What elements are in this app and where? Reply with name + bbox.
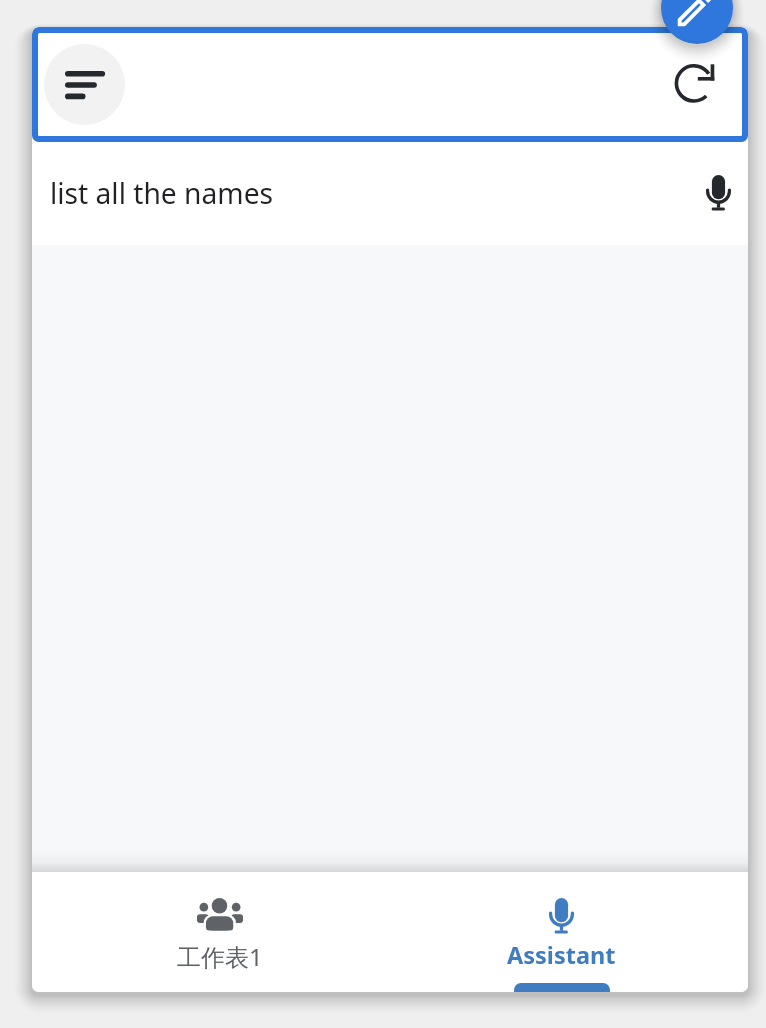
button[interactable]: Menu xyxy=(44,44,125,125)
staticText: 工作表1 xyxy=(177,940,263,973)
staticText: Assistant xyxy=(507,939,616,971)
button[interactable]: Voice input xyxy=(683,157,748,228)
button[interactable]: Refresh xyxy=(655,42,735,122)
staticText: list all the names xyxy=(50,174,274,212)
button[interactable]: list all the names xyxy=(32,142,748,245)
button[interactable]: Compose xyxy=(661,0,733,44)
button[interactable]: Assistant xyxy=(451,872,671,992)
button[interactable]: 工作表1 xyxy=(110,872,330,992)
